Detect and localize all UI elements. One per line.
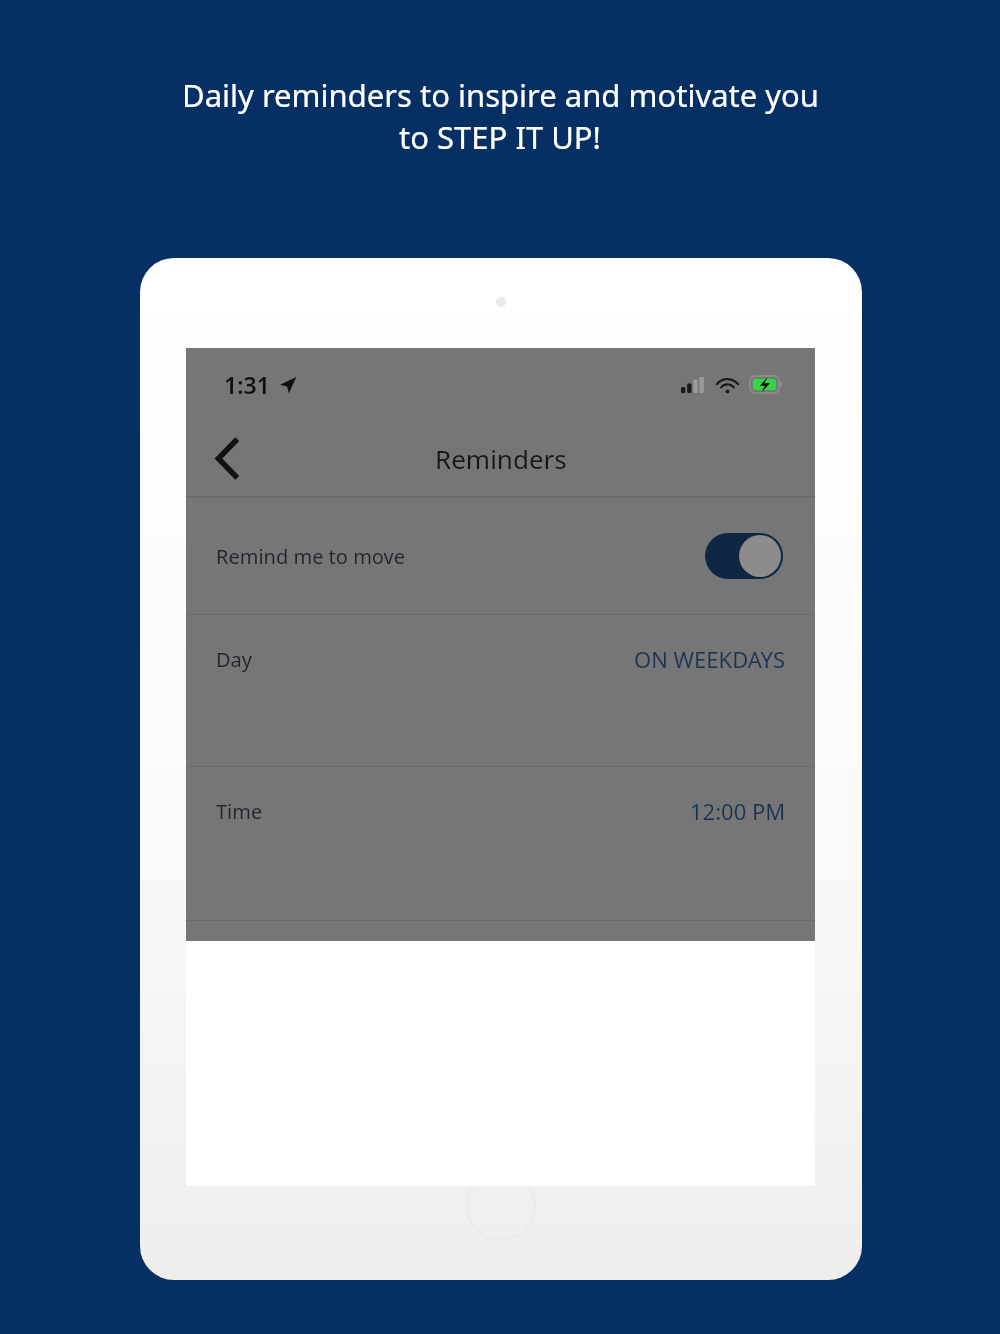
staticText: Day bbox=[216, 646, 253, 673]
staticText: ON WEEKDAYS bbox=[634, 644, 786, 674]
staticText: Daily reminders to inspire and motivate … bbox=[182, 74, 819, 116]
staticText: to STEP IT UP! bbox=[399, 116, 601, 158]
staticText: 1:31 bbox=[224, 369, 270, 400]
button[interactable]: Back bbox=[198, 429, 256, 487]
button[interactable]: Day bbox=[186, 615, 815, 766]
staticText: Reminders bbox=[435, 441, 567, 476]
button[interactable]: Time bbox=[186, 767, 815, 920]
button[interactable]: Remind me to move bbox=[705, 533, 783, 579]
staticText: Remind me to move bbox=[216, 543, 405, 570]
button[interactable]: Remind me to move bbox=[186, 498, 815, 614]
staticText: Time bbox=[216, 798, 263, 825]
staticText: 12:00 PM bbox=[690, 796, 786, 826]
